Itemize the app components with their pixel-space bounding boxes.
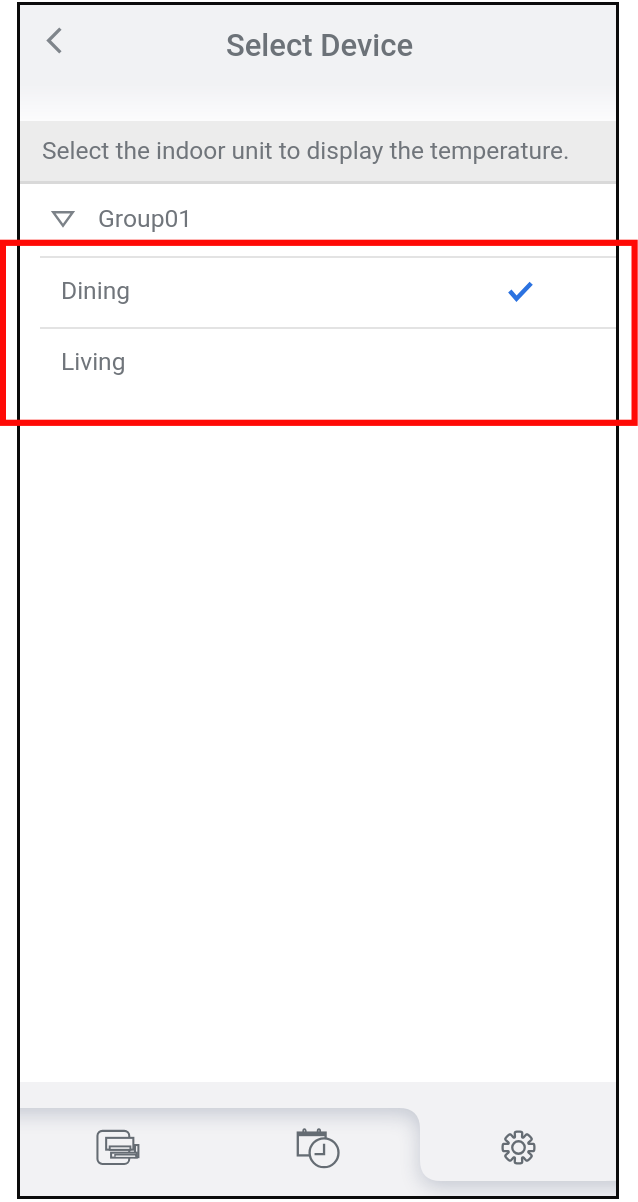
button[interactable]: Schedule — [279, 1125, 354, 1170]
button[interactable]: Devices — [79, 1125, 154, 1170]
button[interactable]: Living — [20, 329, 616, 398]
button[interactable]: Back — [20, 6, 88, 74]
button[interactable]: Dining — [20, 258, 616, 327]
staticText: Living — [61, 347, 126, 376]
button[interactable]: Settings — [481, 1125, 556, 1170]
button[interactable]: Group01 — [20, 184, 616, 256]
staticText: Dining — [61, 276, 131, 305]
staticText: Select Device — [226, 27, 414, 63]
staticText: Group01 — [98, 204, 193, 233]
staticText: Select the indoor unit to display the te… — [42, 136, 570, 165]
